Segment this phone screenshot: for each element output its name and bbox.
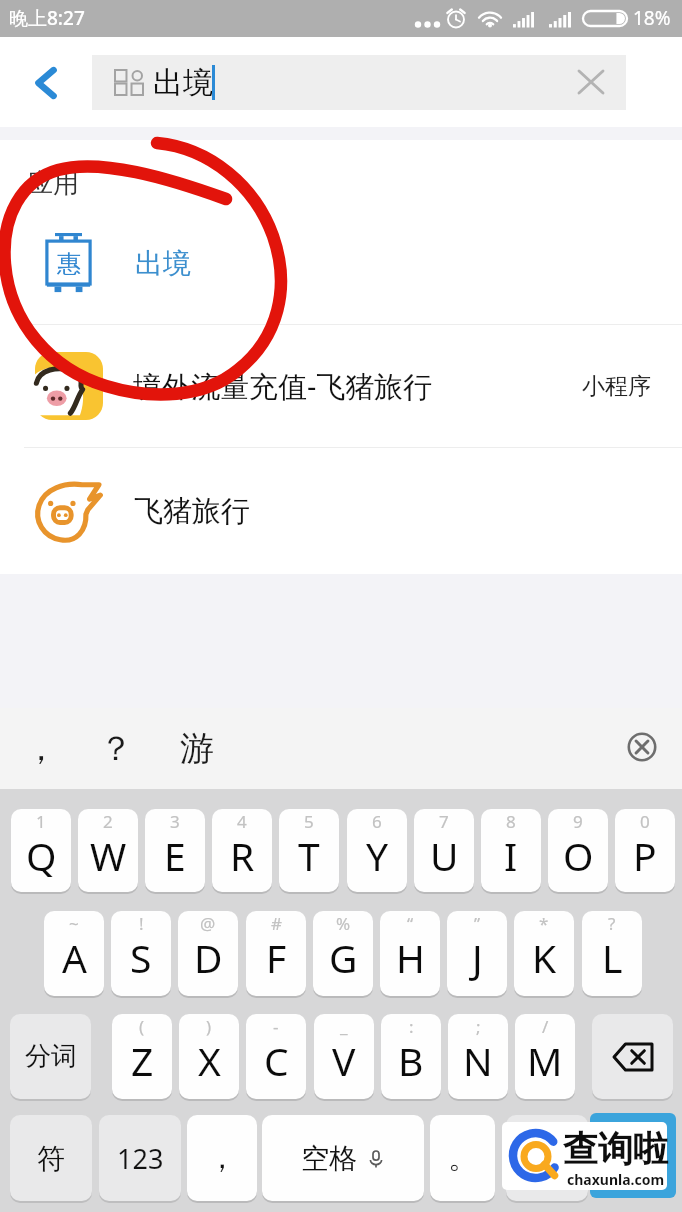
button[interactable]: 3 (145, 809, 205, 892)
staticText: K (532, 931, 557, 984)
button[interactable]: ” (447, 911, 507, 996)
button[interactable]: Backspace (592, 1014, 673, 1099)
button[interactable]: 飞猪旅行 (0, 448, 682, 574)
staticText: V (332, 1034, 356, 1087)
staticText: 查询啦 (563, 1127, 668, 1171)
staticText: 8 (506, 810, 516, 833)
staticText: M (527, 1034, 563, 1087)
button[interactable]: Clear (567, 58, 614, 105)
staticText: T (298, 829, 320, 882)
button[interactable]: ~ (44, 911, 104, 996)
staticText: 飞猪旅行 (134, 493, 250, 530)
button[interactable]: 分词 (10, 1014, 91, 1099)
staticText: W (90, 829, 127, 882)
staticText: : (409, 1015, 414, 1038)
staticText: H (396, 931, 425, 984)
button[interactable]: ? (582, 911, 642, 996)
staticText: P (633, 829, 657, 882)
staticText: 晚上8:27 (9, 5, 85, 31)
staticText: 0 (640, 810, 650, 833)
button[interactable]: 9 (548, 809, 608, 892)
button[interactable]: 2 (78, 809, 138, 892)
button[interactable]: ， (187, 1115, 257, 1201)
staticText: E (164, 829, 186, 882)
button[interactable]: 空格 (262, 1115, 424, 1201)
button[interactable]: 7 (414, 809, 474, 892)
staticText: Q (26, 829, 57, 882)
button[interactable]: “ (380, 911, 440, 996)
staticText: U (430, 829, 459, 882)
button[interactable]: # (246, 911, 306, 996)
staticText: # (271, 912, 282, 935)
staticText: 出境 (153, 64, 213, 102)
button[interactable]: 惠 (0, 202, 682, 324)
button[interactable]: ; (448, 1014, 508, 1099)
staticText: / (542, 1015, 549, 1038)
staticText: @ (200, 912, 216, 935)
staticText: % (336, 912, 351, 935)
staticText: - (273, 1015, 279, 1038)
button[interactable]: 8 (481, 809, 541, 892)
staticText: “ (407, 912, 414, 935)
staticText: ) (206, 1015, 212, 1038)
staticText: ? (608, 912, 616, 935)
button[interactable]: / (515, 1014, 575, 1099)
button[interactable]: 出境 (92, 55, 626, 110)
staticText: 18% (633, 5, 671, 31)
button[interactable]: _ (314, 1014, 374, 1099)
button[interactable]: ( (112, 1014, 172, 1099)
button[interactable]: 5 (279, 809, 339, 892)
staticText: F (266, 931, 287, 984)
staticText: Y (366, 829, 389, 882)
staticText: 1 (36, 810, 46, 833)
button[interactable]: : (381, 1014, 441, 1099)
staticText: 应用 (27, 167, 79, 200)
staticText: 2 (103, 810, 113, 833)
button[interactable]: 1 (11, 809, 71, 892)
staticText: Z (131, 1034, 154, 1087)
staticText: 惠 (57, 249, 81, 279)
staticText: B (398, 1034, 424, 1087)
button[interactable]: Hide keyboard (620, 725, 664, 769)
staticText: 5 (304, 810, 314, 833)
staticText: O (563, 829, 594, 882)
staticText: 7 (439, 810, 449, 833)
staticText: 分词 (25, 1040, 77, 1073)
button[interactable]: 123 (99, 1115, 181, 1201)
button[interactable]: Back (22, 59, 70, 107)
staticText: ( (139, 1015, 145, 1038)
button[interactable]: 符 (10, 1115, 92, 1201)
staticText: A (62, 931, 87, 984)
staticText: X (198, 1034, 221, 1087)
staticText: 境外流量充值-飞猪旅行 (133, 366, 433, 406)
button[interactable]: 境外流量充值-飞猪旅行 (0, 325, 682, 447)
button[interactable]: - (246, 1014, 306, 1099)
staticText: 。 (448, 1139, 478, 1177)
button[interactable]: ! (111, 911, 171, 996)
button[interactable]: 。 (430, 1115, 495, 1201)
staticText: 出境 (135, 246, 191, 281)
button[interactable]: ) (179, 1014, 239, 1099)
button[interactable]: 6 (347, 809, 407, 892)
button[interactable]: 0 (615, 809, 675, 892)
button[interactable]: * (514, 911, 574, 996)
staticText: 4 (237, 810, 247, 833)
staticText: 9 (573, 810, 583, 833)
button[interactable]: 4 (212, 809, 272, 892)
staticText: ， (207, 1139, 237, 1177)
staticText: C (264, 1034, 289, 1087)
staticText: ” (474, 912, 481, 935)
staticText: _ (340, 1015, 348, 1038)
staticText: 符 (37, 1141, 65, 1176)
staticText: 3 (170, 810, 180, 833)
staticText: 6 (372, 810, 382, 833)
staticText: J (472, 931, 483, 984)
staticText: ， (24, 727, 58, 770)
staticText: 空格 (301, 1141, 357, 1176)
button[interactable]: % (313, 911, 373, 996)
button[interactable] (506, 1115, 588, 1201)
staticText: G (329, 931, 358, 984)
staticText: D (194, 931, 223, 984)
button[interactable]: @ (178, 911, 238, 996)
staticText: R (230, 829, 255, 882)
